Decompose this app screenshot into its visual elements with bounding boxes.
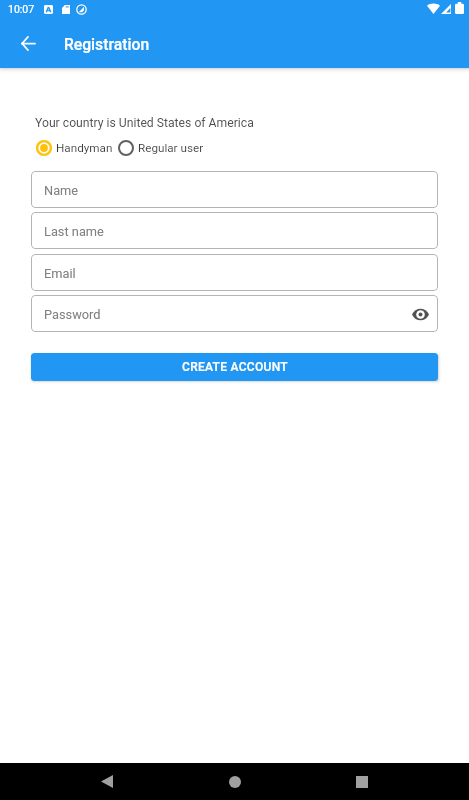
button[interactable]: Email	[31, 254, 438, 291]
staticText: Email	[44, 266, 76, 281]
staticText: Name	[44, 183, 79, 198]
staticText: Password	[44, 307, 101, 322]
button[interactable]: Show password	[408, 302, 432, 326]
button[interactable]: CREATE ACCOUNT	[31, 353, 438, 381]
button[interactable]: Name	[31, 171, 438, 208]
button[interactable]: Last name	[31, 212, 438, 249]
button[interactable]: Password	[31, 295, 438, 332]
staticText: Regular user	[138, 141, 204, 155]
staticText: Registration	[64, 35, 150, 53]
button[interactable]: Home	[215, 763, 255, 800]
button[interactable]: Regular user	[118, 140, 204, 156]
button[interactable]: Back	[0, 19, 56, 68]
staticText: Last name	[44, 224, 104, 239]
staticText: Your country is United States of America	[35, 116, 254, 130]
staticText: CREATE ACCOUNT	[182, 360, 288, 374]
button[interactable]: Recents	[342, 763, 382, 800]
button[interactable]: Handyman	[36, 140, 113, 156]
staticText: 10:07	[8, 3, 35, 15]
button[interactable]: Back	[87, 763, 127, 800]
staticText: Handyman	[56, 141, 113, 155]
